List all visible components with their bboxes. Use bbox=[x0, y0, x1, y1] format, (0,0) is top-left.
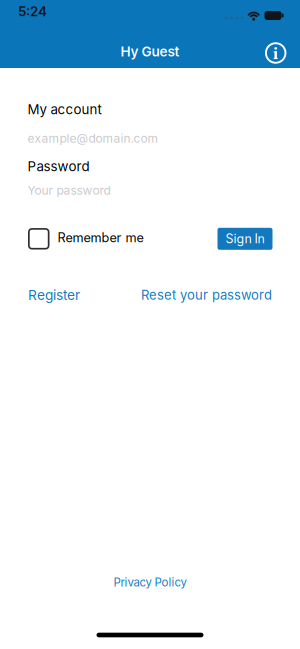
staticText: Privacy Policy bbox=[113, 575, 186, 589]
staticText: Hy Guest bbox=[120, 43, 179, 60]
button[interactable]: Register bbox=[28, 287, 80, 303]
button[interactable]: Remember me bbox=[28, 228, 143, 250]
staticText: Reset your password bbox=[141, 287, 272, 303]
staticText: Password bbox=[27, 158, 89, 174]
staticText: Your password bbox=[27, 183, 110, 197]
staticText: Register bbox=[28, 287, 80, 303]
staticText: My account bbox=[27, 101, 101, 117]
staticText: 5:24 bbox=[18, 3, 47, 19]
button[interactable]: Reset your password bbox=[141, 287, 272, 303]
staticText: example@domain.com bbox=[27, 131, 158, 146]
button[interactable]: Info bbox=[261, 38, 291, 68]
staticText: Remember me bbox=[57, 230, 143, 245]
button[interactable]: Privacy Policy bbox=[113, 575, 186, 589]
button[interactable]: Sign In bbox=[217, 228, 272, 250]
staticText: Sign In bbox=[225, 231, 264, 246]
